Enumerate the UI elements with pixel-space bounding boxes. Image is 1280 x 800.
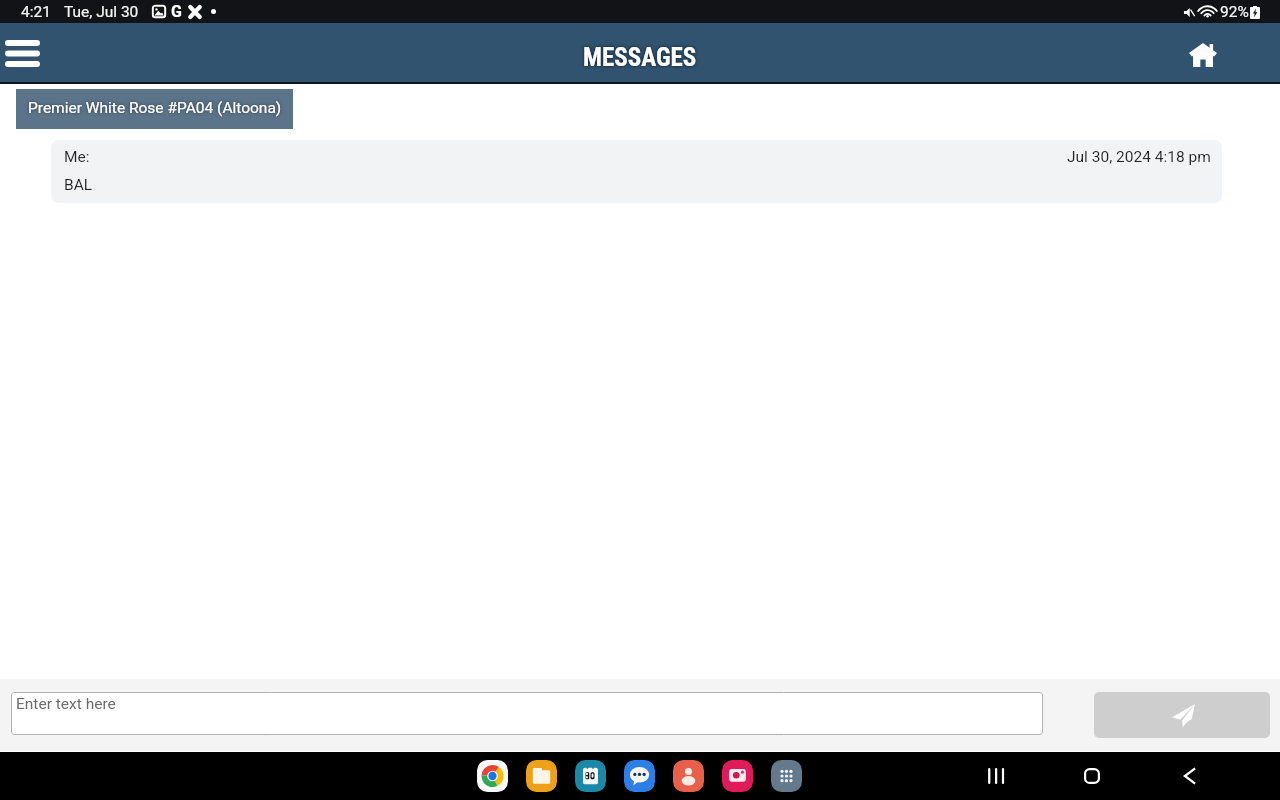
button[interactable]: Camera (722, 760, 753, 792)
staticText: Enter text here (16, 695, 116, 713)
staticText: G (171, 2, 182, 21)
staticText: MESSAGES (583, 43, 697, 72)
button[interactable]: Premier White Rose #PA04 (Altoona) (16, 89, 293, 129)
staticText: 4:21 (21, 3, 51, 21)
staticText: Tue, Jul 30 (64, 3, 139, 21)
staticText: Premier White Rose #PA04 (Altoona) (28, 99, 282, 117)
button[interactable]: Chrome (477, 760, 508, 792)
button[interactable]: My Files (526, 760, 557, 792)
button[interactable]: Apps (771, 760, 802, 792)
button[interactable]: Enter text here (11, 692, 1043, 735)
button[interactable]: Recent apps (974, 755, 1016, 797)
button[interactable]: Calendar (575, 760, 606, 792)
button[interactable]: Contacts (673, 760, 704, 792)
staticText: Jul 30, 2024 4:18 pm (1067, 148, 1211, 166)
button[interactable]: Home (1181, 35, 1225, 75)
staticText: Me: (64, 148, 90, 166)
button[interactable]: Home (1071, 755, 1113, 797)
staticText: 92% (1220, 3, 1249, 21)
staticText: BAL (64, 176, 93, 194)
button[interactable]: Back (1169, 755, 1211, 797)
button[interactable]: Me: (51, 140, 1222, 203)
button[interactable]: Send message (1094, 692, 1270, 738)
button[interactable]: Open navigation drawer (5, 40, 40, 68)
button[interactable]: Messages (624, 760, 655, 792)
